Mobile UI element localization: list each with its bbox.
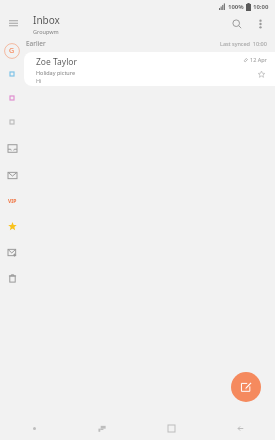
button[interactable]: Back [206,416,275,440]
staticText: Earlier [26,39,46,48]
button[interactable]: Folder [6,116,18,128]
button[interactable]: Notification dot [0,416,68,440]
button[interactable]: Open navigation drawer [0,13,26,35]
staticText: Zoe Taylor [36,56,78,68]
button[interactable]: Inbox [5,141,19,155]
button[interactable]: Trash [5,271,19,285]
staticText: Hi [36,77,42,84]
staticText: Groupwm [33,28,59,35]
staticText: 10:00 [253,3,269,11]
button[interactable]: Folder [6,92,18,104]
staticText: G [9,46,15,56]
button[interactable]: Home [137,416,206,440]
button[interactable]: VIP [5,194,19,208]
button[interactable]: Search [225,13,249,35]
button[interactable]: Star email [256,69,267,80]
button[interactable]: More options [249,13,271,35]
button[interactable]: Drafts [5,245,19,259]
button[interactable]: Account [4,43,20,59]
button[interactable]: Recent apps [68,416,137,440]
staticText: Last synced 10:00 [220,40,267,47]
staticText: VIP [8,198,17,205]
button[interactable]: Folder [6,68,18,80]
button[interactable]: Starred [5,219,19,233]
staticText: 12 Apr [250,56,267,63]
staticText: Inbox [33,13,60,27]
staticText: Holiday picture [36,69,76,76]
staticText: 100% [228,3,244,11]
button[interactable]: Mail [5,168,19,182]
button[interactable]: Zoe Taylor [24,52,275,86]
button[interactable]: Compose email [231,372,261,402]
